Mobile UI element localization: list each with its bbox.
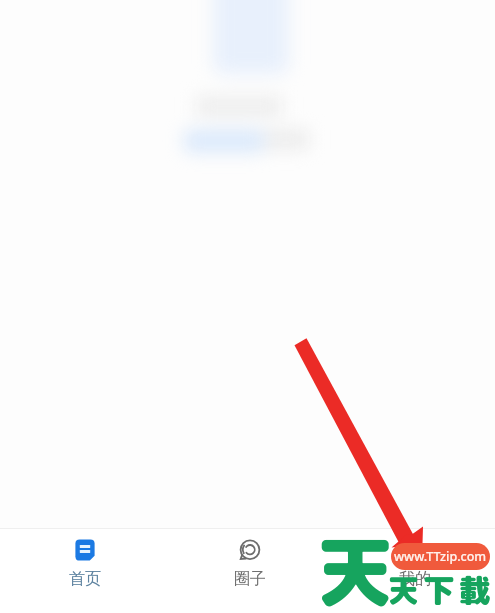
staticText: 首页 bbox=[69, 569, 101, 589]
staticText: 天下載 bbox=[388, 569, 495, 612]
staticText: 我的 bbox=[399, 569, 431, 589]
staticText: www.TTzip.com bbox=[394, 548, 487, 565]
staticText: 圈子 bbox=[234, 569, 266, 589]
button[interactable]: 我的 bbox=[332, 529, 495, 613]
button[interactable]: 首页 bbox=[2, 529, 167, 613]
staticText: 天 bbox=[317, 518, 393, 613]
button[interactable]: 圈子 bbox=[167, 529, 332, 613]
other: Annotation arrow bbox=[0, 0, 495, 613]
